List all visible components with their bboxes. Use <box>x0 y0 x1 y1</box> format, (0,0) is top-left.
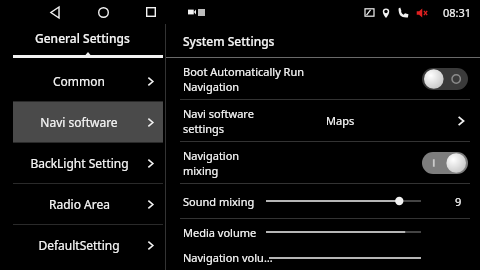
staticText: DefaultSetting <box>38 237 120 253</box>
staticText: Navigation volu… <box>183 250 273 265</box>
button[interactable]: Back <box>44 1 66 23</box>
staticText: General Settings <box>35 30 130 46</box>
button[interactable]: Navi software settings <box>13 102 163 142</box>
button[interactable]: Radio Area <box>13 184 163 224</box>
staticText: Maps <box>326 113 355 128</box>
button[interactable]: Boot Automatically Run <box>166 58 480 99</box>
button[interactable]: Common <box>13 61 163 101</box>
staticText: Navigation <box>183 79 240 94</box>
staticText: Navigation <box>183 148 240 163</box>
button[interactable]: Navigation <box>166 142 480 183</box>
button[interactable]: BackLight Setting <box>13 143 163 183</box>
button[interactable]: Home <box>92 1 114 23</box>
staticText: Navi software <box>183 106 254 121</box>
button[interactable]: Media volume <box>166 219 480 245</box>
button[interactable]: Recents <box>140 1 162 23</box>
button[interactable]: Sound mixing <box>166 184 480 218</box>
staticText: Common <box>53 73 105 89</box>
staticText: 08:31 <box>443 5 472 20</box>
button[interactable]: Navi software <box>166 100 480 141</box>
staticText: Radio Area <box>49 196 110 212</box>
staticText: settings <box>183 121 225 136</box>
staticText: Sound mixing <box>183 194 255 209</box>
button[interactable]: Toggle on <box>422 152 468 174</box>
staticText: 9 <box>455 194 462 209</box>
button[interactable]: Toggle off <box>422 68 468 90</box>
button[interactable]: DefaultSetting <box>13 225 163 265</box>
staticText: System Settings <box>183 33 275 49</box>
staticText: Media volume <box>183 225 257 240</box>
button[interactable]: Navigation volu… <box>166 245 480 270</box>
staticText: mixing <box>183 163 219 178</box>
staticText: Boot Automatically Run <box>183 64 305 79</box>
button[interactable]: Media <box>188 8 205 16</box>
staticText: Navi software settings <box>17 114 141 130</box>
staticText: BackLight Setting <box>30 155 129 171</box>
